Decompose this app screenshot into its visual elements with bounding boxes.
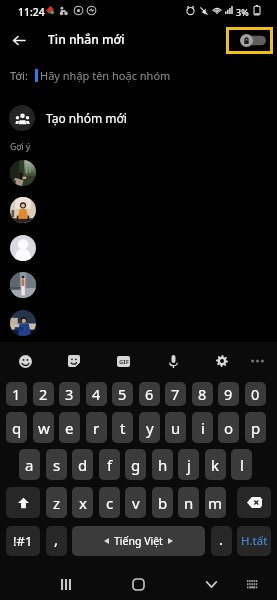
staticText: 5 [118, 384, 127, 404]
staticText: 3 [65, 384, 74, 404]
staticText: i [201, 418, 205, 438]
button[interactable]: f [99, 449, 120, 480]
button[interactable]: !#1 [6, 526, 40, 556]
staticText: l [240, 455, 244, 475]
staticText: m [208, 493, 223, 513]
button[interactable]: . [211, 526, 232, 556]
button[interactable]: Settings [211, 350, 233, 372]
staticText: y [146, 418, 154, 438]
button[interactable]: h [152, 449, 173, 480]
button[interactable]: q [6, 412, 27, 443]
button[interactable]: g [125, 449, 146, 480]
button[interactable]: Home [124, 570, 152, 598]
button[interactable]: Suggested contact [0, 229, 277, 267]
button[interactable]: j [178, 449, 199, 480]
staticText: v [132, 493, 140, 513]
button[interactable]: 7 [165, 382, 186, 406]
staticText: Tạo nhóm mới [46, 110, 127, 126]
button[interactable]: Stickers [63, 350, 85, 372]
staticText: t [120, 418, 126, 438]
button[interactable]: x [72, 487, 93, 518]
button[interactable]: r [86, 412, 107, 443]
staticText: GIF [119, 358, 129, 366]
staticText: k [211, 455, 220, 475]
button[interactable]: , [46, 526, 67, 556]
staticText: . [219, 529, 224, 549]
staticText: n [184, 493, 194, 513]
button[interactable]: Tạo nhóm mới [0, 100, 277, 136]
button[interactable]: z [46, 487, 67, 518]
button[interactable]: Suggested contact [0, 154, 277, 192]
staticText: Tiếng Việt [114, 534, 163, 548]
button[interactable]: l [231, 449, 252, 480]
button[interactable]: o [218, 412, 239, 443]
button[interactable]: 9 [218, 382, 239, 406]
staticText: u [171, 418, 181, 438]
button[interactable]: Suggested contact [0, 266, 277, 304]
button[interactable]: 4 [86, 382, 107, 406]
button[interactable]: c [99, 487, 120, 518]
button[interactable]: y [139, 412, 160, 443]
staticText: x [79, 493, 87, 513]
button[interactable]: 3 [59, 382, 80, 406]
button[interactable]: v [125, 487, 146, 518]
button[interactable]: More options [246, 350, 268, 372]
button[interactable]: n [178, 487, 199, 518]
staticText: p [251, 418, 261, 438]
button[interactable]: Voice input [162, 350, 184, 372]
staticText: 0 [251, 384, 260, 404]
staticText: e [65, 418, 74, 438]
staticText: d [78, 455, 88, 475]
staticText: w [38, 418, 50, 438]
button[interactable]: e [59, 412, 80, 443]
button[interactable]: Suggested contact [0, 304, 277, 342]
button[interactable]: Tới: [0, 62, 277, 88]
button[interactable]: w [33, 412, 54, 443]
staticText: 2 [39, 384, 48, 404]
staticText: q [12, 418, 22, 438]
button[interactable]: b [152, 487, 173, 518]
button[interactable]: 0 [245, 382, 266, 406]
staticText: Hãy nhập tên hoặc nhóm [40, 68, 171, 83]
button[interactable]: Recent apps [52, 570, 80, 598]
staticText: 11:24 [18, 5, 45, 19]
button[interactable]: u [165, 412, 186, 443]
button[interactable]: Tiếng Việt [72, 526, 205, 556]
button[interactable]: t [112, 412, 133, 443]
button[interactable]: k [205, 449, 226, 480]
button[interactable]: a [19, 449, 40, 480]
button[interactable]: GIF [112, 350, 134, 372]
staticText: b [158, 493, 168, 513]
staticText: Tới: [10, 68, 28, 83]
staticText: Tin nhắn mới [48, 31, 125, 48]
staticText: 3% [236, 6, 249, 18]
button[interactable]: d [72, 449, 93, 480]
button[interactable]: Hide keyboard [197, 570, 225, 598]
button[interactable]: Backspace [237, 487, 271, 518]
staticText: Gợi ý [10, 141, 31, 153]
button[interactable]: 5 [112, 382, 133, 406]
button[interactable]: 1 [6, 382, 27, 406]
button[interactable]: 2 [33, 382, 54, 406]
button[interactable]: i [192, 412, 213, 443]
button[interactable]: 6 [139, 382, 160, 406]
button[interactable]: m [205, 487, 226, 518]
button[interactable]: Back [5, 26, 33, 54]
button[interactable]: p [245, 412, 266, 443]
button[interactable]: Emoji [14, 350, 36, 372]
staticText: 7 [171, 384, 180, 404]
button[interactable]: Shift [6, 487, 40, 518]
button[interactable]: Change keyboard [238, 570, 266, 598]
staticText: 4 [92, 384, 101, 404]
button[interactable]: Suggested contact [0, 191, 277, 229]
staticText: 8 [198, 384, 207, 404]
button[interactable]: Toggle keyboard [226, 27, 273, 54]
staticText: a [25, 455, 34, 475]
staticText: j [187, 455, 191, 475]
staticText: o [224, 418, 234, 438]
staticText: H.tất [241, 533, 268, 549]
staticText: z [53, 493, 61, 513]
button[interactable]: 8 [192, 382, 213, 406]
button[interactable]: s [46, 449, 67, 480]
button[interactable]: H.tất [237, 526, 271, 556]
